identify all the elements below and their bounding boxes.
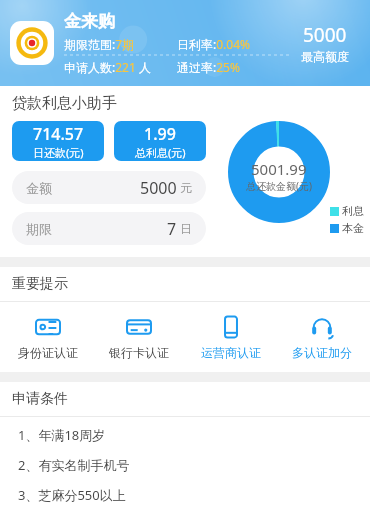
staticText: 总利息(元): [135, 145, 186, 160]
staticText: 多认证加分: [292, 345, 352, 360]
button[interactable]: 期限: [12, 212, 206, 245]
staticText: 期限: [26, 221, 52, 237]
staticText: 日: [180, 221, 192, 236]
button[interactable]: 运营商认证: [187, 312, 275, 362]
staticText: 重要提示: [12, 275, 68, 293]
staticText: 申请条件: [12, 390, 68, 408]
staticText: 运营商认证: [201, 345, 261, 360]
staticText: 5000: [140, 177, 177, 199]
button[interactable]: 身份证认证: [4, 312, 92, 362]
staticText: 714.57: [33, 123, 84, 145]
button[interactable]: 金额: [12, 171, 206, 204]
staticText: 金额: [26, 180, 52, 196]
staticText: 身份证认证: [18, 345, 78, 360]
staticText: 日还款(元): [33, 145, 84, 160]
staticText: 1、年满18周岁: [18, 426, 106, 444]
other: 身份证认证: [35, 314, 61, 340]
button[interactable]: 1.99: [114, 121, 206, 161]
other: 多认证加分: [309, 314, 335, 340]
button[interactable]: 银行卡认证: [95, 312, 183, 362]
staticText: 总还款金额(元): [246, 179, 312, 193]
staticText: 日利率:0.04%: [177, 36, 250, 52]
staticText: 5001.99: [251, 159, 307, 179]
staticText: 申请人数:221 人: [64, 59, 151, 75]
staticText: 本金: [342, 221, 364, 235]
staticText: 最高额度: [301, 49, 349, 64]
other: 银行卡认证: [126, 314, 152, 340]
staticText: 金来购: [64, 11, 115, 32]
staticText: 1.99: [144, 123, 176, 145]
staticText: 银行卡认证: [109, 345, 169, 360]
button[interactable]: 多认证加分: [278, 312, 366, 362]
staticText: 5000: [303, 22, 347, 48]
other: 运营商认证: [218, 314, 244, 340]
staticText: 贷款利息小助手: [12, 94, 117, 113]
staticText: 通过率:25%: [177, 59, 240, 75]
staticText: 元: [180, 180, 192, 195]
staticText: 利息: [342, 204, 364, 218]
staticText: 3、芝麻分550以上: [18, 486, 126, 504]
staticText: 7: [167, 218, 177, 240]
button[interactable]: 714.57: [12, 121, 104, 161]
staticText: 期限范围:7期: [64, 36, 135, 52]
staticText: 2、有实名制手机号: [18, 456, 130, 474]
